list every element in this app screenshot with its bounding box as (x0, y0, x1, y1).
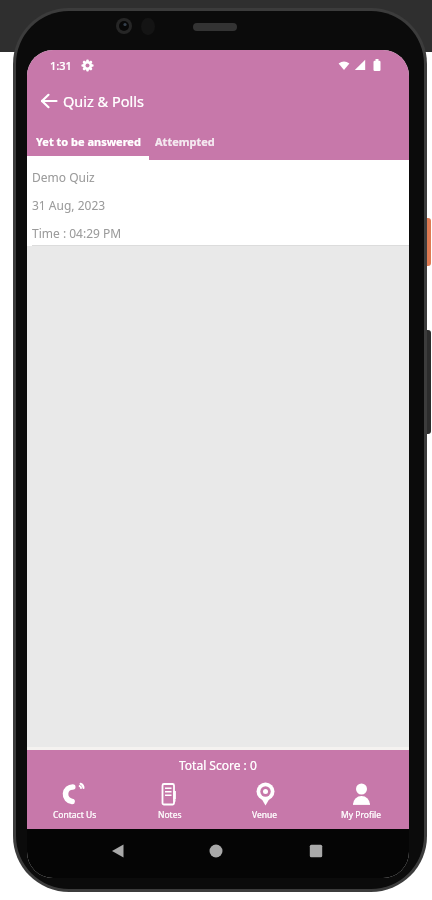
button[interactable]: Venue (217, 782, 313, 829)
button[interactable]: Contact Us (27, 782, 122, 829)
button[interactable]: Demo Quiz (27, 160, 409, 246)
button[interactable] (104, 837, 132, 865)
staticText: Total Score : 0 (179, 757, 257, 773)
button[interactable] (27, 80, 58, 122)
staticText: Venue (252, 809, 278, 821)
staticText: Contact Us (53, 809, 97, 821)
staticText: Demo Quiz (32, 169, 95, 185)
staticText: Attempted (155, 134, 215, 149)
staticText: My Profile (341, 809, 381, 821)
button[interactable] (202, 837, 230, 865)
staticText: 1:31 (50, 58, 72, 73)
staticText: Quiz & Polls (63, 91, 144, 111)
staticText: Yet to be answered (36, 134, 141, 149)
staticText: Time : 04:29 PM (32, 225, 122, 241)
button[interactable]: My Profile (313, 782, 409, 829)
button[interactable]: Attempted (149, 122, 221, 160)
button[interactable]: Notes (122, 782, 217, 829)
staticText: 31 Aug, 2023 (32, 197, 106, 213)
button[interactable]: Yet to be answered (27, 122, 149, 160)
button[interactable] (302, 837, 330, 865)
staticText: Notes (158, 809, 182, 821)
